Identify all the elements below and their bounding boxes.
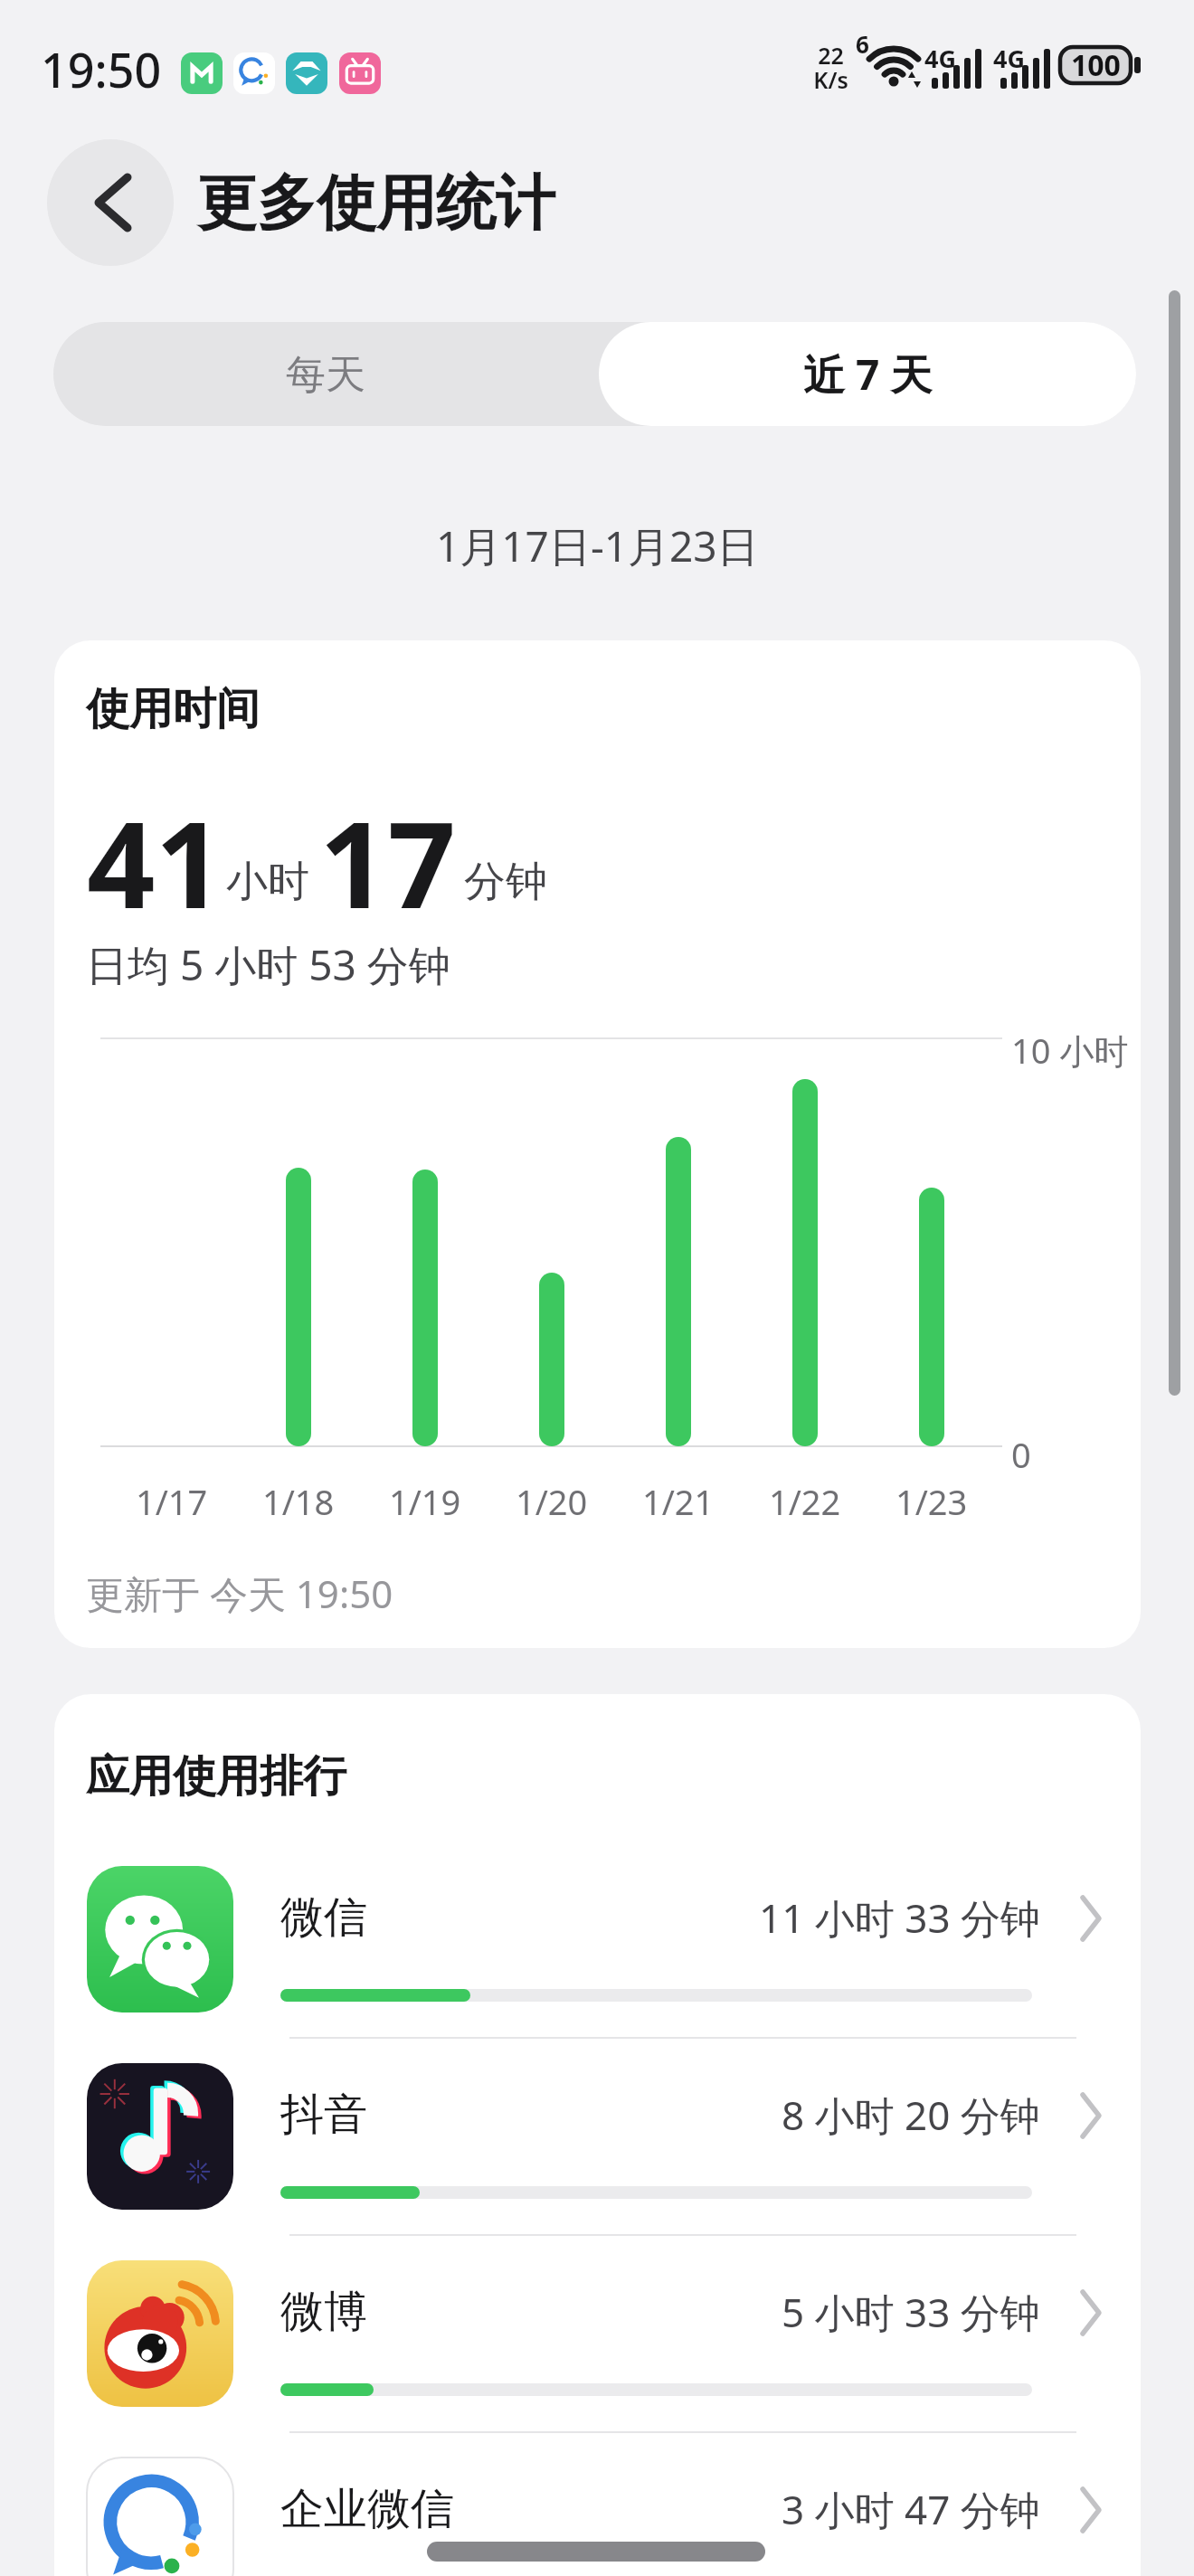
button[interactable]: 每天	[145, 311, 507, 438]
button[interactable]	[47, 139, 174, 266]
button[interactable]	[72, 2260, 1104, 2458]
staticText: 使用时间	[86, 682, 260, 736]
staticText: 8 小时 20 分钟	[782, 2088, 1040, 2142]
button[interactable]	[72, 2063, 1104, 2260]
staticText: 19:50	[41, 37, 162, 101]
staticText: 3 小时 47 分钟	[782, 2482, 1040, 2536]
staticText: 1/21	[642, 1478, 715, 1525]
staticText: 41	[87, 781, 224, 908]
staticText: 11 小时 33 分钟	[759, 1890, 1040, 1945]
staticText: 应用使用排行	[86, 1749, 346, 1804]
staticText: 日均 5 小时 53 分钟	[86, 936, 450, 993]
staticText: 100	[1071, 45, 1121, 85]
staticText: 企业微信	[280, 2482, 454, 2536]
staticText: 每天	[286, 350, 365, 400]
staticText: 10 小时	[1011, 1027, 1129, 1074]
staticText: 微博	[280, 2285, 367, 2339]
staticText: 1/18	[262, 1478, 335, 1525]
staticText: 5 小时 33 分钟	[782, 2285, 1040, 2339]
staticText: 微信	[280, 1890, 367, 1945]
staticText: 22 K/s	[813, 40, 848, 96]
staticText: 4G	[993, 42, 1025, 74]
staticText: 1/22	[769, 1478, 841, 1525]
button[interactable]	[72, 2458, 1104, 2576]
staticText: 17	[319, 781, 457, 908]
staticText: 0	[1011, 1431, 1031, 1478]
staticText: 1/17	[136, 1478, 208, 1525]
staticText: 1/20	[516, 1478, 588, 1525]
staticText: 更多使用统计	[197, 166, 555, 241]
staticText: 1/19	[389, 1478, 461, 1525]
staticText: 抖音	[280, 2088, 367, 2142]
button[interactable]	[72, 1866, 1104, 2063]
staticText: 1月17日-1月23日	[436, 517, 759, 574]
staticText: 更新于 今天 19:50	[86, 1567, 393, 1619]
button[interactable]	[599, 322, 1136, 426]
staticText: 分钟	[464, 856, 547, 908]
staticText: 4G	[924, 42, 956, 74]
staticText: 近 7 天	[803, 346, 933, 402]
staticText: 6	[856, 28, 869, 60]
staticText: 小时	[226, 856, 309, 908]
staticText: 1/23	[895, 1478, 968, 1525]
